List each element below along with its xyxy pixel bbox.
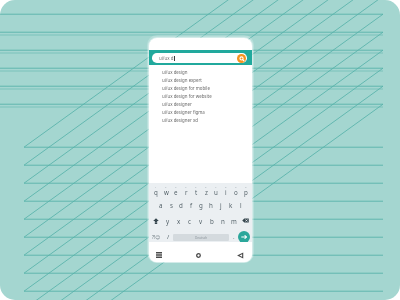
- staticText: ?!☺: [152, 234, 161, 240]
- staticText: 2: [165, 185, 167, 188]
- button[interactable]: .: [229, 231, 238, 243]
- staticText: v: [199, 217, 203, 225]
- button[interactable]: l: [236, 200, 246, 210]
- staticText: .: [233, 233, 235, 241]
- staticText: 7: [215, 185, 217, 188]
- button[interactable]: m: [228, 215, 239, 226]
- button[interactable]: 2: [161, 185, 171, 196]
- button[interactable]: f: [186, 200, 196, 210]
- button[interactable]: 6: [201, 185, 211, 196]
- staticText: y: [166, 217, 170, 225]
- staticText: z: [205, 188, 208, 196]
- staticText: 6: [205, 185, 207, 188]
- staticText: 9: [235, 185, 237, 188]
- button[interactable]: ui/ux design for mobile: [152, 84, 247, 92]
- staticText: /: [167, 233, 170, 241]
- staticText: s: [170, 201, 173, 209]
- button[interactable]: j: [216, 200, 226, 210]
- button[interactable]: ui/ux designer: [152, 100, 247, 108]
- button[interactable]: ui/ux design for website: [152, 92, 247, 100]
- staticText: g: [199, 201, 203, 209]
- button[interactable]: /: [164, 231, 173, 243]
- button[interactable]: v: [195, 215, 206, 226]
- button[interactable]: 5: [191, 185, 201, 196]
- staticText: ui/ux designer xd: [162, 117, 198, 123]
- staticText: x: [177, 217, 181, 225]
- staticText: e: [174, 188, 178, 196]
- button[interactable]: ui/ux design expert: [152, 76, 247, 84]
- staticText: w: [164, 188, 169, 196]
- button[interactable]: 7: [211, 185, 221, 196]
- button[interactable]: ui/ux d: [152, 53, 247, 63]
- button[interactable]: c: [184, 215, 195, 226]
- staticText: ui/ux design expert: [162, 77, 202, 83]
- staticText: i: [225, 188, 227, 196]
- staticText: q: [154, 188, 158, 196]
- staticText: 4: [185, 185, 187, 188]
- button[interactable]: b: [206, 215, 217, 226]
- staticText: p: [244, 188, 248, 196]
- button[interactable]: x: [173, 215, 184, 226]
- staticText: k: [229, 201, 233, 209]
- button[interactable]: 8: [221, 185, 231, 196]
- staticText: 3: [175, 185, 177, 188]
- button[interactable]: n: [217, 215, 228, 226]
- button[interactable]: Shift: [149, 215, 162, 226]
- staticText: o: [234, 188, 238, 196]
- staticText: ui/ux designer figma: [162, 109, 205, 115]
- staticText: ui/ux d: [159, 55, 174, 61]
- button[interactable]: ?!☺: [149, 231, 164, 243]
- staticText: r: [185, 188, 188, 196]
- staticText: ui/ux design: [162, 69, 188, 75]
- button[interactable]: d: [176, 200, 186, 210]
- button[interactable]: Home: [192, 249, 204, 261]
- staticText: a: [159, 201, 163, 209]
- button[interactable]: Back: [234, 249, 246, 261]
- staticText: u: [214, 188, 218, 196]
- button[interactable]: y: [162, 215, 173, 226]
- button[interactable]: g: [196, 200, 206, 210]
- staticText: m: [231, 217, 237, 225]
- staticText: t: [195, 188, 198, 196]
- staticText: c: [188, 217, 191, 225]
- staticText: h: [209, 201, 213, 209]
- staticText: ui/ux designer: [162, 101, 192, 107]
- staticText: d: [179, 201, 183, 209]
- button[interactable]: Search: [237, 54, 246, 63]
- button[interactable]: Recent apps: [153, 249, 165, 261]
- staticText: 1: [155, 185, 157, 188]
- button[interactable]: 3: [171, 185, 181, 196]
- button[interactable]: k: [226, 200, 236, 210]
- staticText: Deutsch: [195, 236, 208, 240]
- button[interactable]: ui/ux designer xd: [152, 116, 247, 124]
- staticText: l: [240, 201, 242, 209]
- button[interactable]: Deutsch: [173, 234, 229, 241]
- button[interactable]: Backspace: [239, 215, 252, 226]
- button[interactable]: ui/ux design: [152, 68, 247, 76]
- button[interactable]: Enter: [238, 231, 250, 243]
- staticText: 0: [245, 185, 247, 188]
- staticText: n: [221, 217, 225, 225]
- button[interactable]: ui/ux designer figma: [152, 108, 247, 116]
- staticText: 5: [195, 185, 197, 188]
- button[interactable]: 9: [231, 185, 241, 196]
- button[interactable]: h: [206, 200, 216, 210]
- button[interactable]: 0: [241, 185, 251, 196]
- staticText: j: [220, 201, 222, 209]
- staticText: 8: [225, 185, 227, 188]
- button[interactable]: 4: [181, 185, 191, 196]
- button[interactable]: a: [155, 200, 166, 210]
- staticText: b: [210, 217, 214, 225]
- staticText: f: [190, 201, 193, 209]
- staticText: ui/ux design for website: [162, 93, 212, 99]
- button[interactable]: s: [166, 200, 176, 210]
- staticText: ui/ux design for mobile: [162, 85, 210, 91]
- button[interactable]: 1: [150, 185, 161, 196]
